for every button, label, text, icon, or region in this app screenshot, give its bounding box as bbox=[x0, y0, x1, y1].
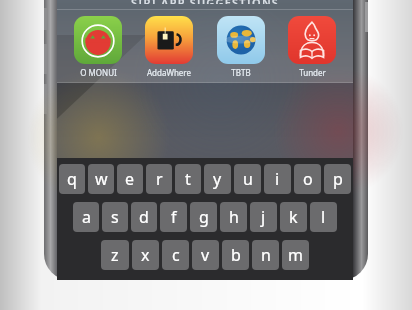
staticText: u bbox=[243, 168, 253, 190]
staticText: k bbox=[289, 206, 298, 228]
button[interactable]: i bbox=[264, 164, 291, 194]
other: AddaWhere bbox=[145, 16, 193, 64]
button[interactable]: AddaWhere bbox=[138, 16, 200, 78]
staticText: O MONUI bbox=[80, 67, 117, 78]
staticText: t bbox=[185, 168, 191, 190]
button[interactable]: w bbox=[88, 164, 114, 194]
button[interactable]: b bbox=[222, 240, 249, 270]
button[interactable]: n bbox=[252, 240, 279, 270]
staticText: n bbox=[261, 244, 271, 266]
button[interactable]: v bbox=[192, 240, 219, 270]
button[interactable]: z bbox=[101, 240, 129, 270]
staticText: i bbox=[275, 168, 280, 190]
button[interactable]: x bbox=[132, 240, 159, 270]
staticText: f bbox=[171, 206, 177, 228]
button[interactable]: y bbox=[204, 164, 231, 194]
staticText: w bbox=[95, 168, 108, 190]
staticText: q bbox=[67, 168, 77, 190]
staticText: a bbox=[82, 206, 91, 228]
staticText: p bbox=[333, 168, 343, 190]
staticText: m bbox=[288, 244, 303, 266]
staticText: h bbox=[229, 206, 239, 228]
staticText: x bbox=[141, 244, 150, 266]
button[interactable]: j bbox=[250, 202, 277, 232]
button[interactable]: e bbox=[117, 164, 143, 194]
staticText: l bbox=[321, 206, 326, 228]
button[interactable]: o bbox=[294, 164, 321, 194]
other: O MONUI bbox=[74, 16, 122, 64]
button[interactable]: t bbox=[175, 164, 201, 194]
staticText: v bbox=[201, 244, 210, 266]
staticText: r bbox=[156, 168, 163, 190]
button[interactable]: a bbox=[73, 202, 99, 232]
button[interactable]: m bbox=[282, 240, 309, 270]
staticText: AddaWhere bbox=[147, 67, 191, 78]
button[interactable]: d bbox=[131, 202, 157, 232]
other: TBTB bbox=[217, 16, 265, 64]
staticText: o bbox=[303, 168, 313, 190]
button[interactable]: q bbox=[59, 164, 85, 194]
staticText: j bbox=[261, 206, 266, 228]
staticText: z bbox=[111, 244, 119, 266]
staticText: y bbox=[213, 168, 222, 190]
staticText: Tunder bbox=[299, 67, 326, 78]
button[interactable]: p bbox=[324, 164, 351, 194]
staticText: SIRI APP SUGGESTIONS bbox=[131, 0, 280, 4]
staticText: s bbox=[111, 206, 119, 228]
button[interactable]: r bbox=[146, 164, 172, 194]
button[interactable]: l bbox=[310, 202, 337, 232]
staticText: e bbox=[125, 168, 135, 190]
button[interactable]: k bbox=[280, 202, 307, 232]
button[interactable]: h bbox=[220, 202, 247, 232]
button[interactable]: O MONUI bbox=[67, 16, 129, 78]
button[interactable]: Tunder bbox=[281, 16, 343, 78]
staticText: TBTB bbox=[231, 67, 251, 78]
button[interactable]: g bbox=[190, 202, 217, 232]
staticText: g bbox=[199, 206, 209, 228]
button[interactable]: c bbox=[162, 240, 189, 270]
button[interactable]: f bbox=[160, 202, 187, 232]
staticText: c bbox=[172, 244, 180, 266]
button[interactable]: TBTB bbox=[210, 16, 272, 78]
button[interactable]: s bbox=[102, 202, 128, 232]
button[interactable]: u bbox=[234, 164, 261, 194]
staticText: b bbox=[231, 244, 241, 266]
staticText: d bbox=[139, 206, 149, 228]
other: Tunder bbox=[288, 16, 336, 64]
